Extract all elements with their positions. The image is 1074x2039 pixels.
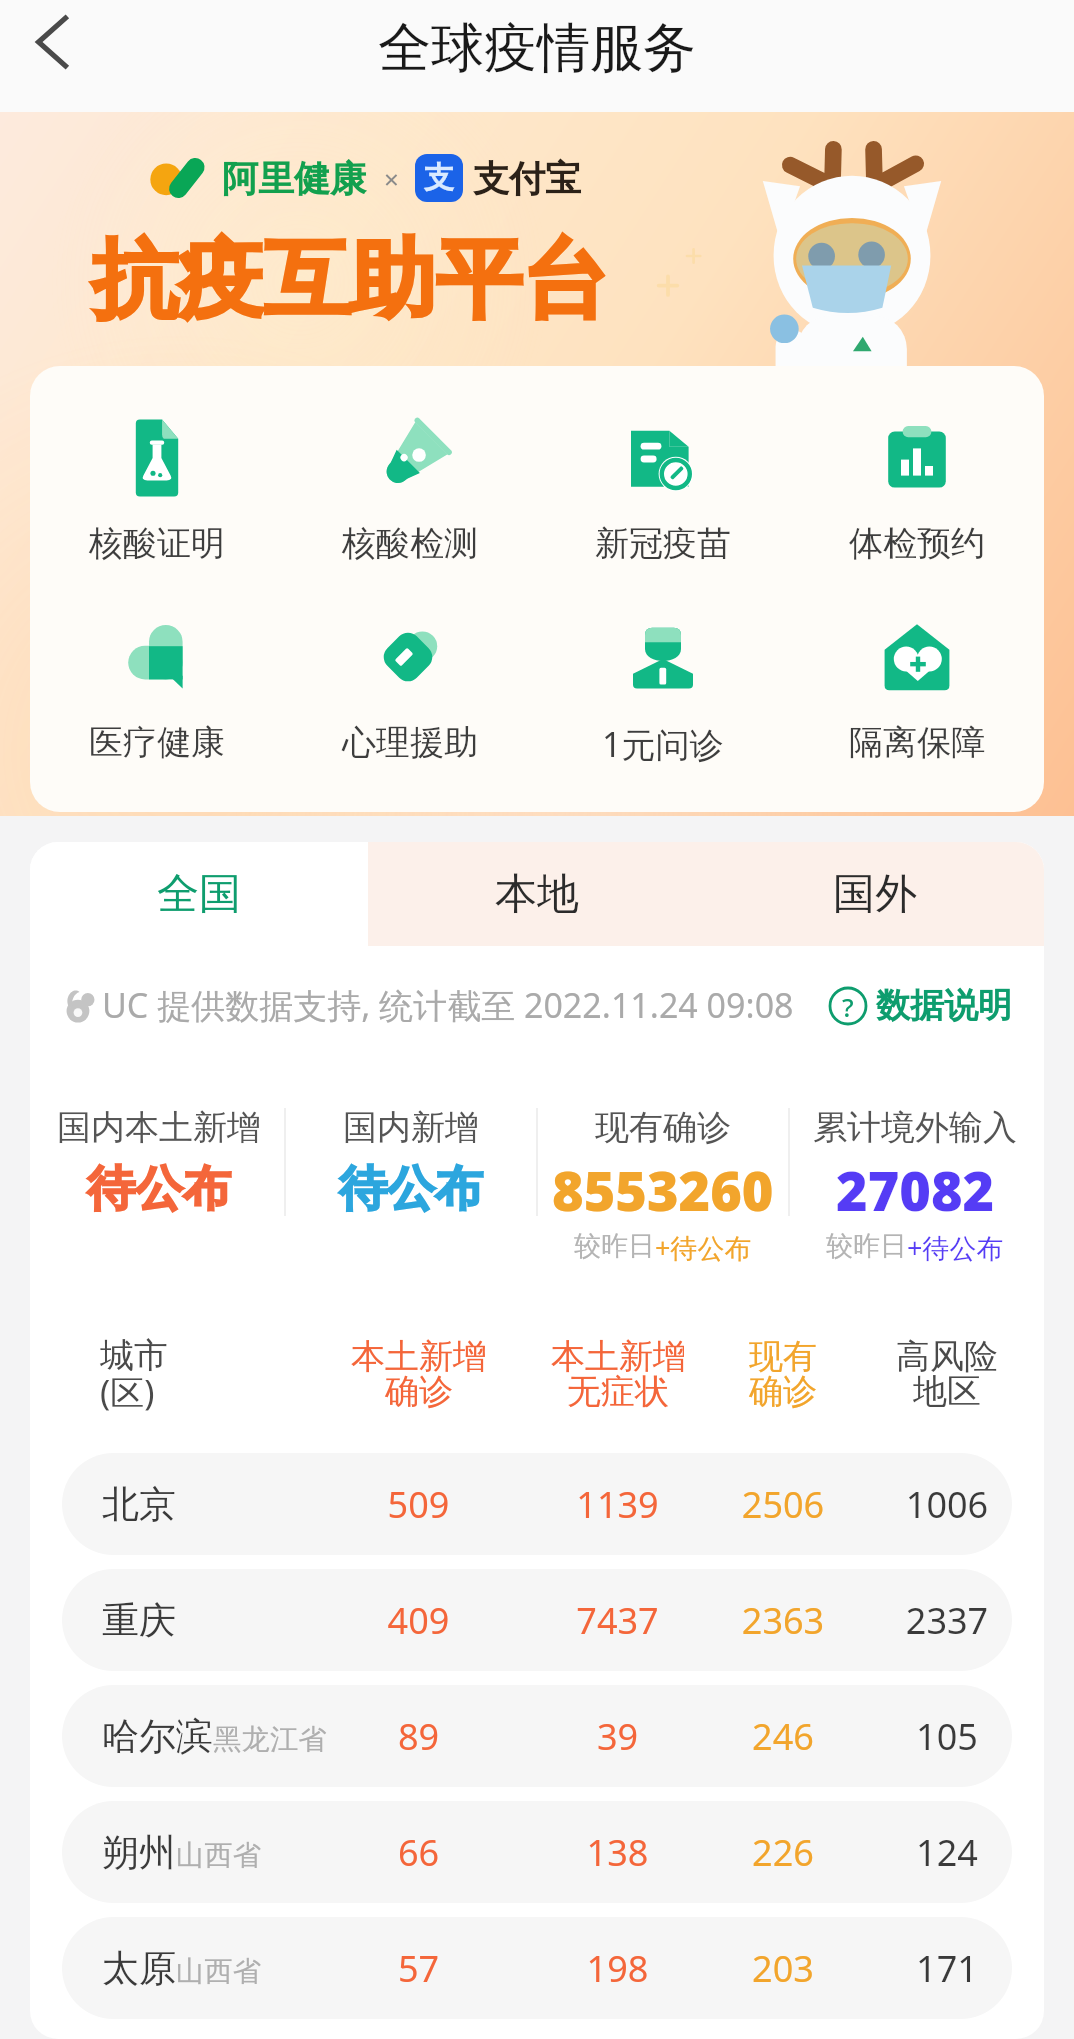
staticText: 本地 [495,868,579,921]
button[interactable]: 核酸检测 [283,418,536,565]
button[interactable]: Back [12,2,92,82]
staticText: 509 [286,1480,551,1529]
staticText: 现有确诊 [595,1106,731,1149]
staticText: 国内本土新增 [57,1106,261,1149]
staticText: 203 [684,1944,882,1993]
staticText: 国外 [833,868,917,921]
button[interactable]: 新冠疫苗 [536,418,790,565]
button[interactable]: 全国 [30,842,368,946]
staticText: 198 [551,1944,684,1993]
button[interactable]: ? [828,984,1012,1027]
staticText: 山西省 [176,1954,262,1990]
staticText: 体检预约 [849,522,985,565]
button[interactable]: 北京 [62,1453,1012,1555]
button[interactable]: 心理援助 [283,617,536,764]
button[interactable]: 重庆 [62,1569,1012,1671]
staticText: 新冠疫苗 [595,522,731,565]
staticText: 现有 [749,1335,817,1378]
staticText: +待公布 [655,1229,752,1266]
staticText: 171 [882,1944,1012,1993]
staticText: 246 [684,1712,882,1761]
staticText: 较昨日 [574,1229,655,1263]
staticText: 累计境外输入 [813,1106,1017,1149]
staticText: 本土新增 [551,1335,684,1378]
button[interactable]: 朔州 [62,1801,1012,1903]
staticText: 支 [424,159,454,197]
staticText: 66 [286,1828,551,1877]
button[interactable]: 太原 [62,1917,1012,2019]
button[interactable]: 哈尔滨 [62,1685,1012,1787]
staticText: 无症状 [567,1370,669,1413]
staticText: 全国 [157,868,241,921]
staticText: 124 [882,1828,1012,1877]
button[interactable]: 隔离保障 [790,617,1044,764]
staticText: 朔州 [102,1829,176,1876]
staticText: 支付宝 [473,156,581,201]
staticText: 确诊 [749,1370,817,1413]
staticText: UC 提供数据支持, 统计截至 2022.11.24 09:08 [102,982,794,1028]
staticText: 核酸检测 [342,522,478,565]
staticText: 57 [286,1944,551,1993]
staticText: 抗疫互助平台 [92,226,608,334]
staticText: 阿里健康 [222,156,366,201]
staticText: 心理援助 [342,721,478,764]
staticText: 226 [684,1828,882,1877]
button[interactable]: 国外 [706,842,1044,946]
staticText: 确诊 [385,1370,453,1413]
staticText: ? [842,989,854,1024]
staticText: 核酸证明 [89,522,225,565]
staticText: 哈尔滨 [102,1713,213,1760]
button[interactable]: 1元问诊 [536,617,790,767]
staticText: 本土新增 [351,1335,487,1378]
button[interactable]: 核酸证明 [30,418,283,565]
staticText: 隔离保障 [849,721,985,764]
staticText: +待公布 [907,1229,1004,1266]
button[interactable]: 本地 [368,842,706,946]
button[interactable]: 体检预约 [790,418,1044,565]
staticText: 较昨日 [826,1229,907,1263]
staticText: 39 [551,1712,684,1761]
staticText: 待公布 [339,1159,483,1219]
staticText: (区) [100,1369,155,1415]
staticText: 409 [286,1596,551,1645]
staticText: 山西省 [176,1838,262,1874]
staticText: 国内新增 [343,1106,479,1149]
staticText: 地区 [913,1370,981,1413]
staticText: 数据说明 [876,984,1012,1027]
staticText: 北京 [102,1481,176,1528]
staticText: 7437 [551,1596,684,1645]
staticText: 1006 [882,1480,1012,1529]
staticText: × [384,161,399,196]
staticText: 8553260 [552,1153,774,1225]
staticText: 27082 [836,1153,995,1225]
staticText: 重庆 [102,1597,176,1644]
button[interactable]: 医疗健康 [30,617,283,764]
staticText: 黑龙江省 [213,1722,327,1758]
staticText: 2506 [684,1480,882,1529]
staticText: 1元问诊 [602,721,724,767]
staticText: 全球疫情服务 [378,15,696,82]
staticText: 1139 [551,1480,684,1529]
staticText: 太原 [102,1945,176,1992]
staticText: 89 [286,1712,551,1761]
staticText: 138 [551,1828,684,1877]
staticText: 2337 [882,1596,1012,1645]
staticText: 高风险 [896,1335,998,1378]
staticText: 105 [882,1712,1012,1761]
staticText: 待公布 [87,1159,231,1219]
staticText: 2363 [684,1596,882,1645]
staticText: 医疗健康 [89,721,225,764]
staticText: 城市 [100,1334,168,1377]
